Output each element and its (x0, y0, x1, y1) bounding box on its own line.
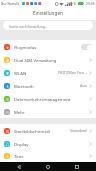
staticText: Display (14, 141, 29, 147)
staticText: Flugmodus (14, 44, 37, 50)
staticText: Töne (14, 153, 24, 159)
button[interactable]: Home (38, 162, 58, 171)
staticText: Standard (70, 128, 87, 133)
staticText: Datenverkehrsmanagement (14, 96, 71, 102)
staticText: Suche nach Einstellung... (9, 24, 48, 28)
staticText: Nur Notrufe (1, 2, 20, 6)
staticText: Dual-SIM-Verwaltung (14, 57, 57, 63)
button[interactable]: Back (9, 162, 29, 171)
staticText: FRITZ!Box Fon... (58, 70, 87, 75)
button[interactable]: Datenverkehrsmanagement (0, 92, 96, 105)
staticText: 20:06 (86, 1, 95, 6)
staticText: Mehr (14, 109, 25, 115)
staticText: Startbildschirmstil (14, 128, 51, 134)
staticText: Bluetooth (14, 83, 34, 89)
button[interactable]: Mehr (0, 105, 96, 118)
button[interactable]: Startbildschirmstil (0, 124, 96, 137)
button[interactable]: WLAN (0, 66, 96, 79)
button[interactable]: Suche nach Einstellung... (3, 21, 93, 30)
button[interactable]: Display (0, 137, 96, 150)
staticText: Aus (80, 83, 87, 88)
button[interactable]: Recents (67, 162, 87, 171)
button[interactable]: Flugmodus (0, 40, 96, 53)
button[interactable]: Bluetooth (0, 79, 96, 92)
staticText: 100 % (67, 2, 76, 6)
button[interactable]: Töne (0, 150, 96, 162)
staticText: WLAN (14, 70, 27, 76)
staticText: Einstellungen (33, 10, 63, 16)
button[interactable]: Dual-SIM-Verwaltung (0, 53, 96, 66)
